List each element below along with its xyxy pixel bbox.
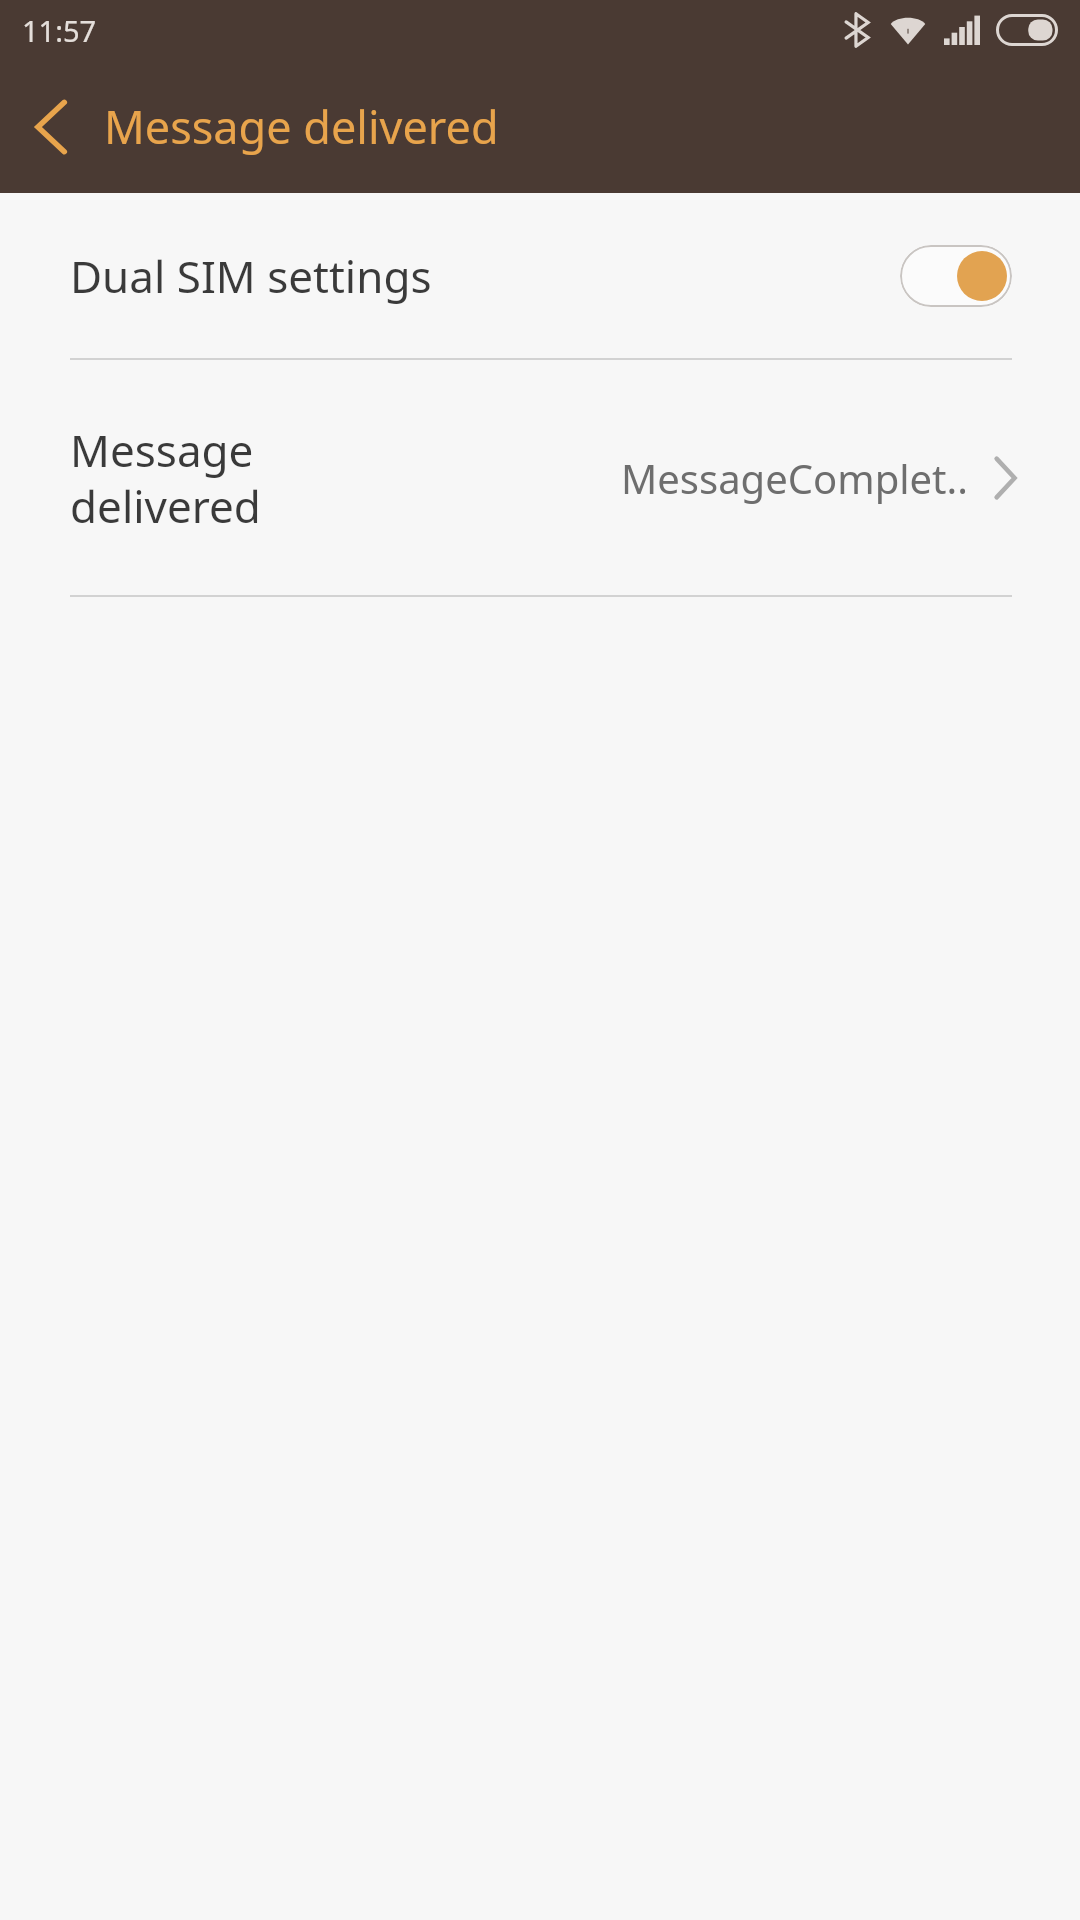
- staticText: Message delivered: [70, 420, 320, 536]
- button[interactable]: Dual SIM settings: [0, 193, 1080, 358]
- staticText: Message delivered: [104, 96, 499, 157]
- staticText: 11:57: [22, 11, 97, 50]
- staticText: Dual SIM settings: [70, 246, 900, 306]
- staticText: MessageComplet..: [621, 451, 968, 505]
- button[interactable]: Dual SIM settings toggle: [900, 245, 1012, 307]
- button[interactable]: Message delivered: [0, 360, 1080, 595]
- button[interactable]: Back: [0, 60, 104, 193]
